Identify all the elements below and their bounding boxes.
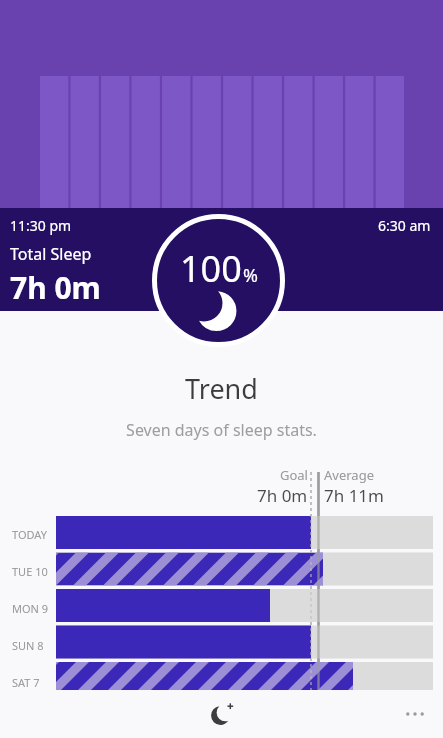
staticText: Trend <box>185 370 258 407</box>
button[interactable]: More options <box>395 694 435 734</box>
staticText: % <box>243 263 258 288</box>
staticText: Average <box>324 466 374 484</box>
staticText: Total Sleep <box>10 243 92 265</box>
staticText: TUE 10 <box>12 564 48 579</box>
staticText: 7h 11m <box>324 484 384 506</box>
staticText: 7h 0m <box>10 267 101 308</box>
staticText: SUN 8 <box>12 638 44 653</box>
staticText: Seven days of sleep stats. <box>126 419 317 441</box>
button[interactable]: Sleep score 100 percent <box>152 214 285 347</box>
staticText: MON 9 <box>12 601 49 616</box>
staticText: 11:30 pm <box>10 216 72 235</box>
staticText: 6:30 am <box>378 216 431 235</box>
staticText: 7h 0m <box>257 484 308 506</box>
button[interactable]: Add sleep <box>198 690 246 738</box>
staticText: Goal <box>280 466 308 484</box>
staticText: 100 <box>180 244 242 293</box>
staticText: TODAY <box>12 527 47 542</box>
staticText: SAT 7 <box>12 675 40 690</box>
